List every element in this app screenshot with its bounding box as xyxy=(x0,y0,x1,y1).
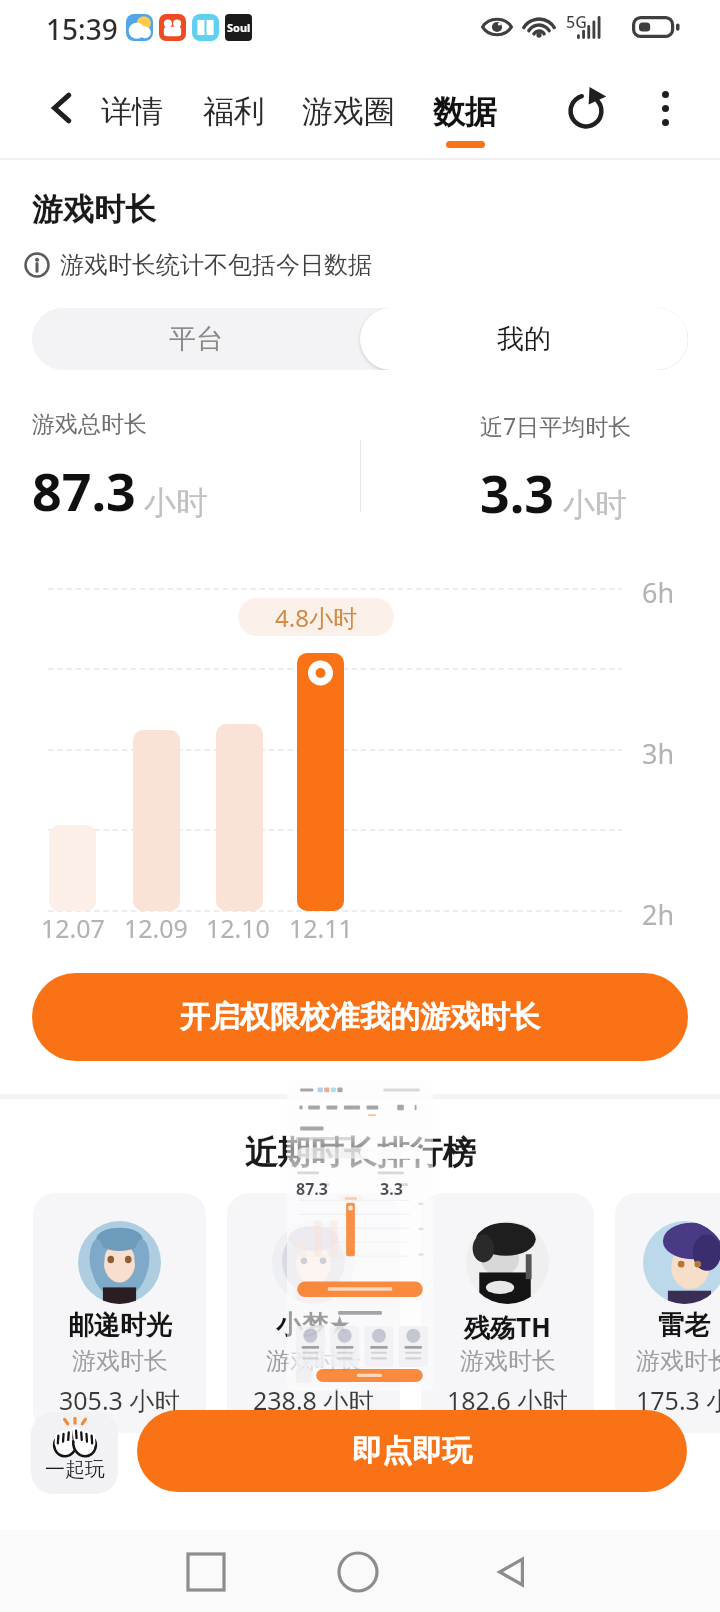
staticText: 游戏圈 xyxy=(302,92,395,131)
staticText: 5G xyxy=(566,11,587,33)
button[interactable]: 数据 xyxy=(433,58,497,158)
staticText: 雷老 xyxy=(658,1309,710,1342)
staticText: 详情 xyxy=(101,92,163,131)
button[interactable]: Back xyxy=(27,58,97,158)
staticText: 12.07 xyxy=(41,911,105,945)
staticText: 15:39 xyxy=(46,10,118,48)
staticText: 游戏时长统计不包括今日数据 xyxy=(60,250,372,280)
button[interactable]: 一起玩 xyxy=(31,1412,118,1494)
button[interactable]: Back xyxy=(481,1542,541,1602)
staticText: 游戏时长 xyxy=(460,1346,556,1376)
button[interactable]: Home xyxy=(328,1542,388,1602)
staticText: 邮递时光 xyxy=(68,1309,172,1342)
staticText: 12.11 xyxy=(289,911,353,945)
button[interactable]: 我的 xyxy=(360,308,688,370)
staticText: 残殇TH xyxy=(464,1309,551,1345)
staticText: 2h xyxy=(642,896,675,933)
button[interactable]: 详情 xyxy=(101,58,163,158)
button[interactable]: More options xyxy=(634,58,696,158)
staticText: 3.3 xyxy=(480,457,555,528)
button[interactable]: 平台 xyxy=(32,308,360,370)
button[interactable]: 雷老 xyxy=(615,1193,720,1433)
staticText: 小时 xyxy=(144,483,208,523)
staticText: 小时 xyxy=(563,485,627,525)
staticText: 3h xyxy=(642,735,675,772)
staticText: 一起玩 xyxy=(45,1457,105,1482)
staticText: 游戏时长 xyxy=(266,1346,362,1376)
button[interactable]: 残殇TH xyxy=(421,1193,594,1433)
staticText: 4.8小时 xyxy=(275,601,357,634)
button[interactable]: Share xyxy=(548,58,624,158)
staticText: 我的 xyxy=(497,322,551,356)
button[interactable]: 小梦★ xyxy=(227,1193,400,1433)
staticText: 福利 xyxy=(203,92,265,131)
staticText: 182.6 小时 xyxy=(447,1383,568,1417)
staticText: 游戏时长 xyxy=(636,1346,720,1376)
staticText: 175.3 小 xyxy=(636,1383,720,1417)
staticText: 即点即玩 xyxy=(352,1432,472,1470)
staticText: 87.3 xyxy=(296,1178,328,1200)
staticText: 平台 xyxy=(169,322,223,356)
staticText: Soul xyxy=(227,20,251,35)
staticText: 数据 xyxy=(433,92,497,132)
staticText: 12.09 xyxy=(124,911,188,945)
button[interactable]: 邮递时光 xyxy=(33,1193,206,1433)
staticText: 87.3 xyxy=(32,455,136,526)
button[interactable]: 即点即玩 xyxy=(137,1410,687,1492)
staticText: 游戏时长 xyxy=(72,1346,168,1376)
button[interactable]: 游戏圈 xyxy=(302,58,395,158)
button[interactable]: Recents xyxy=(176,1542,236,1602)
staticText: 305.3 小时 xyxy=(59,1383,180,1417)
staticText: 小梦★ xyxy=(276,1309,352,1342)
staticText: 12.10 xyxy=(206,911,270,945)
staticText: 游戏时长 xyxy=(32,190,156,229)
staticText: 3.3 xyxy=(380,1178,403,1200)
staticText: 游戏总时长 xyxy=(32,410,147,439)
staticText: 近7日平均时长 xyxy=(480,410,632,441)
staticText: 6h xyxy=(642,574,675,611)
staticText: 238.8 小时 xyxy=(253,1383,374,1417)
staticText: 近期时长排行榜 xyxy=(0,1132,720,1174)
button[interactable]: 福利 xyxy=(203,58,265,158)
button[interactable]: 开启权限校准我的游戏时长 xyxy=(32,973,688,1061)
staticText: 开启权限校准我的游戏时长 xyxy=(180,998,540,1036)
